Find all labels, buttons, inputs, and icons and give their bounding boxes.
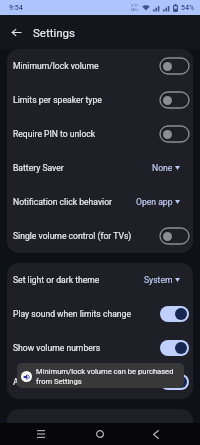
staticText: Single volume control (for TVs) (13, 231, 156, 241)
button[interactable]: Notification click behavior (7, 185, 193, 219)
staticText: Crash reports (13, 426, 156, 436)
staticText: Play sound when limits change (13, 309, 156, 319)
button[interactable]: Battery Saver (7, 151, 193, 185)
staticText: Notification click behavior (13, 197, 133, 207)
staticText: 54% (181, 4, 195, 12)
staticText: Settings (33, 26, 75, 39)
button[interactable]: Limits per speaker type (7, 83, 193, 117)
staticText: 9:54 (9, 4, 23, 12)
staticText: kB/s (131, 8, 139, 12)
button[interactable]: Minimum/lock volume can be purchased fro… (17, 363, 184, 388)
button[interactable]: Back (141, 423, 171, 445)
button[interactable]: Home (85, 423, 115, 445)
button[interactable]: Recent apps (26, 423, 56, 445)
button[interactable]: Crash reports (7, 417, 193, 445)
staticText: System (144, 275, 173, 285)
staticText: Anonymous analytics (13, 377, 156, 387)
button[interactable]: Show volume numbers (7, 331, 193, 365)
staticText: Minimum/lock volume can be purchased fro… (36, 367, 182, 385)
button[interactable]: Play sound when limits change (7, 297, 193, 331)
button[interactable]: Back (0, 15, 33, 49)
button[interactable]: Require PIN to unlock (7, 117, 193, 151)
staticText: Set light or dark theme (13, 275, 141, 285)
button[interactable]: Single volume control (for TVs) (7, 219, 193, 253)
staticText: 0.77 (131, 4, 139, 8)
staticText: Show volume numbers (13, 343, 156, 353)
staticText: None (152, 163, 173, 173)
staticText: Limits per speaker type (13, 95, 156, 105)
staticText: Require PIN to unlock (13, 129, 156, 139)
button[interactable]: Set light or dark theme (7, 263, 193, 297)
staticText: Minimum/lock volume (13, 61, 156, 71)
staticText: Open app (136, 197, 173, 207)
button[interactable]: Minimum/lock volume (7, 49, 193, 83)
button[interactable]: Anonymous analytics (7, 365, 193, 399)
staticText: Battery Saver (13, 163, 149, 173)
